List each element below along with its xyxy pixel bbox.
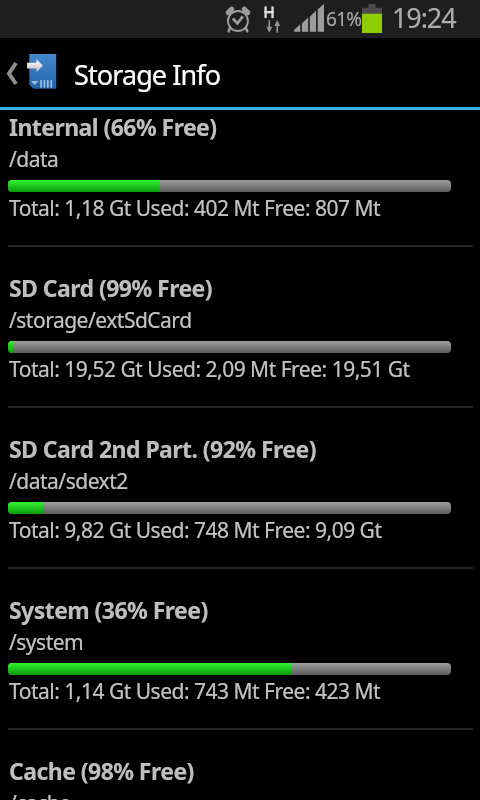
- staticText: SD Card 2nd Part. (92% Free): [9, 433, 316, 464]
- staticText: /cache: [9, 789, 71, 800]
- staticText: Total: 19,52 Gt Used: 2,09 Mt Free: 19,5…: [9, 355, 410, 384]
- button[interactable]: System (36% Free): [0, 593, 480, 754]
- staticText: /data: [9, 145, 59, 174]
- staticText: SD Card (99% Free): [9, 272, 213, 303]
- button[interactable]: Cache (98% Free): [0, 754, 480, 800]
- button[interactable]: Internal (66% Free): [0, 110, 480, 271]
- button[interactable]: Navigate up: [0, 38, 62, 107]
- staticText: /data/sdext2: [9, 467, 128, 496]
- staticText: 19:24: [392, 0, 456, 36]
- staticText: Total: 1,18 Gt Used: 402 Mt Free: 807 Mt: [9, 194, 381, 223]
- staticText: System (36% Free): [9, 594, 208, 625]
- staticText: Cache (98% Free): [9, 755, 194, 786]
- staticText: Storage Info: [74, 56, 221, 93]
- staticText: Total: 1,14 Gt Used: 743 Mt Free: 423 Mt: [9, 677, 381, 706]
- button[interactable]: SD Card 2nd Part. (92% Free): [0, 432, 480, 593]
- staticText: /system: [9, 628, 84, 657]
- staticText: 61%: [326, 6, 362, 32]
- staticText: Total: 9,82 Gt Used: 748 Mt Free: 9,09 G…: [9, 516, 382, 545]
- button[interactable]: SD Card (99% Free): [0, 271, 480, 432]
- staticText: Internal (66% Free): [9, 111, 217, 142]
- staticText: /storage/extSdCard: [9, 306, 192, 335]
